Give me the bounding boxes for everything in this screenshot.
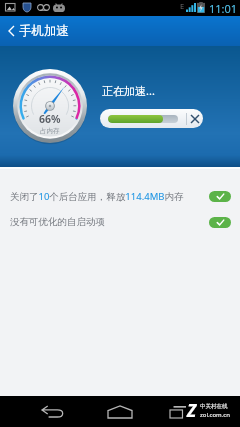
button[interactable]: Cancel <box>187 109 203 128</box>
staticText: 没有可优化的自启动项 <box>10 216 105 228</box>
staticText: zol.com.cn <box>200 411 230 419</box>
staticText: 关闭了10个后台应用，释放114.4MB内存 <box>10 190 184 203</box>
staticText: 66% <box>39 112 61 126</box>
button[interactable]: Back <box>0 16 240 46</box>
staticText: 11:01 <box>209 1 238 16</box>
button[interactable]: Back <box>40 396 66 427</box>
staticText: E <box>180 1 185 11</box>
staticText: 正在加速... <box>102 83 155 98</box>
staticText: 手机加速 <box>19 23 69 39</box>
button[interactable]: 关闭了10个后台应用，释放114.4MB内存 <box>0 183 240 209</box>
staticText: 占内存 <box>40 127 60 135</box>
button[interactable]: Home <box>106 396 134 427</box>
staticText: 中关村在线 <box>200 403 228 410</box>
staticText: Z <box>187 399 197 422</box>
button[interactable]: 没有可优化的自启动项 <box>0 209 240 235</box>
button[interactable]: Recent apps <box>168 396 188 427</box>
